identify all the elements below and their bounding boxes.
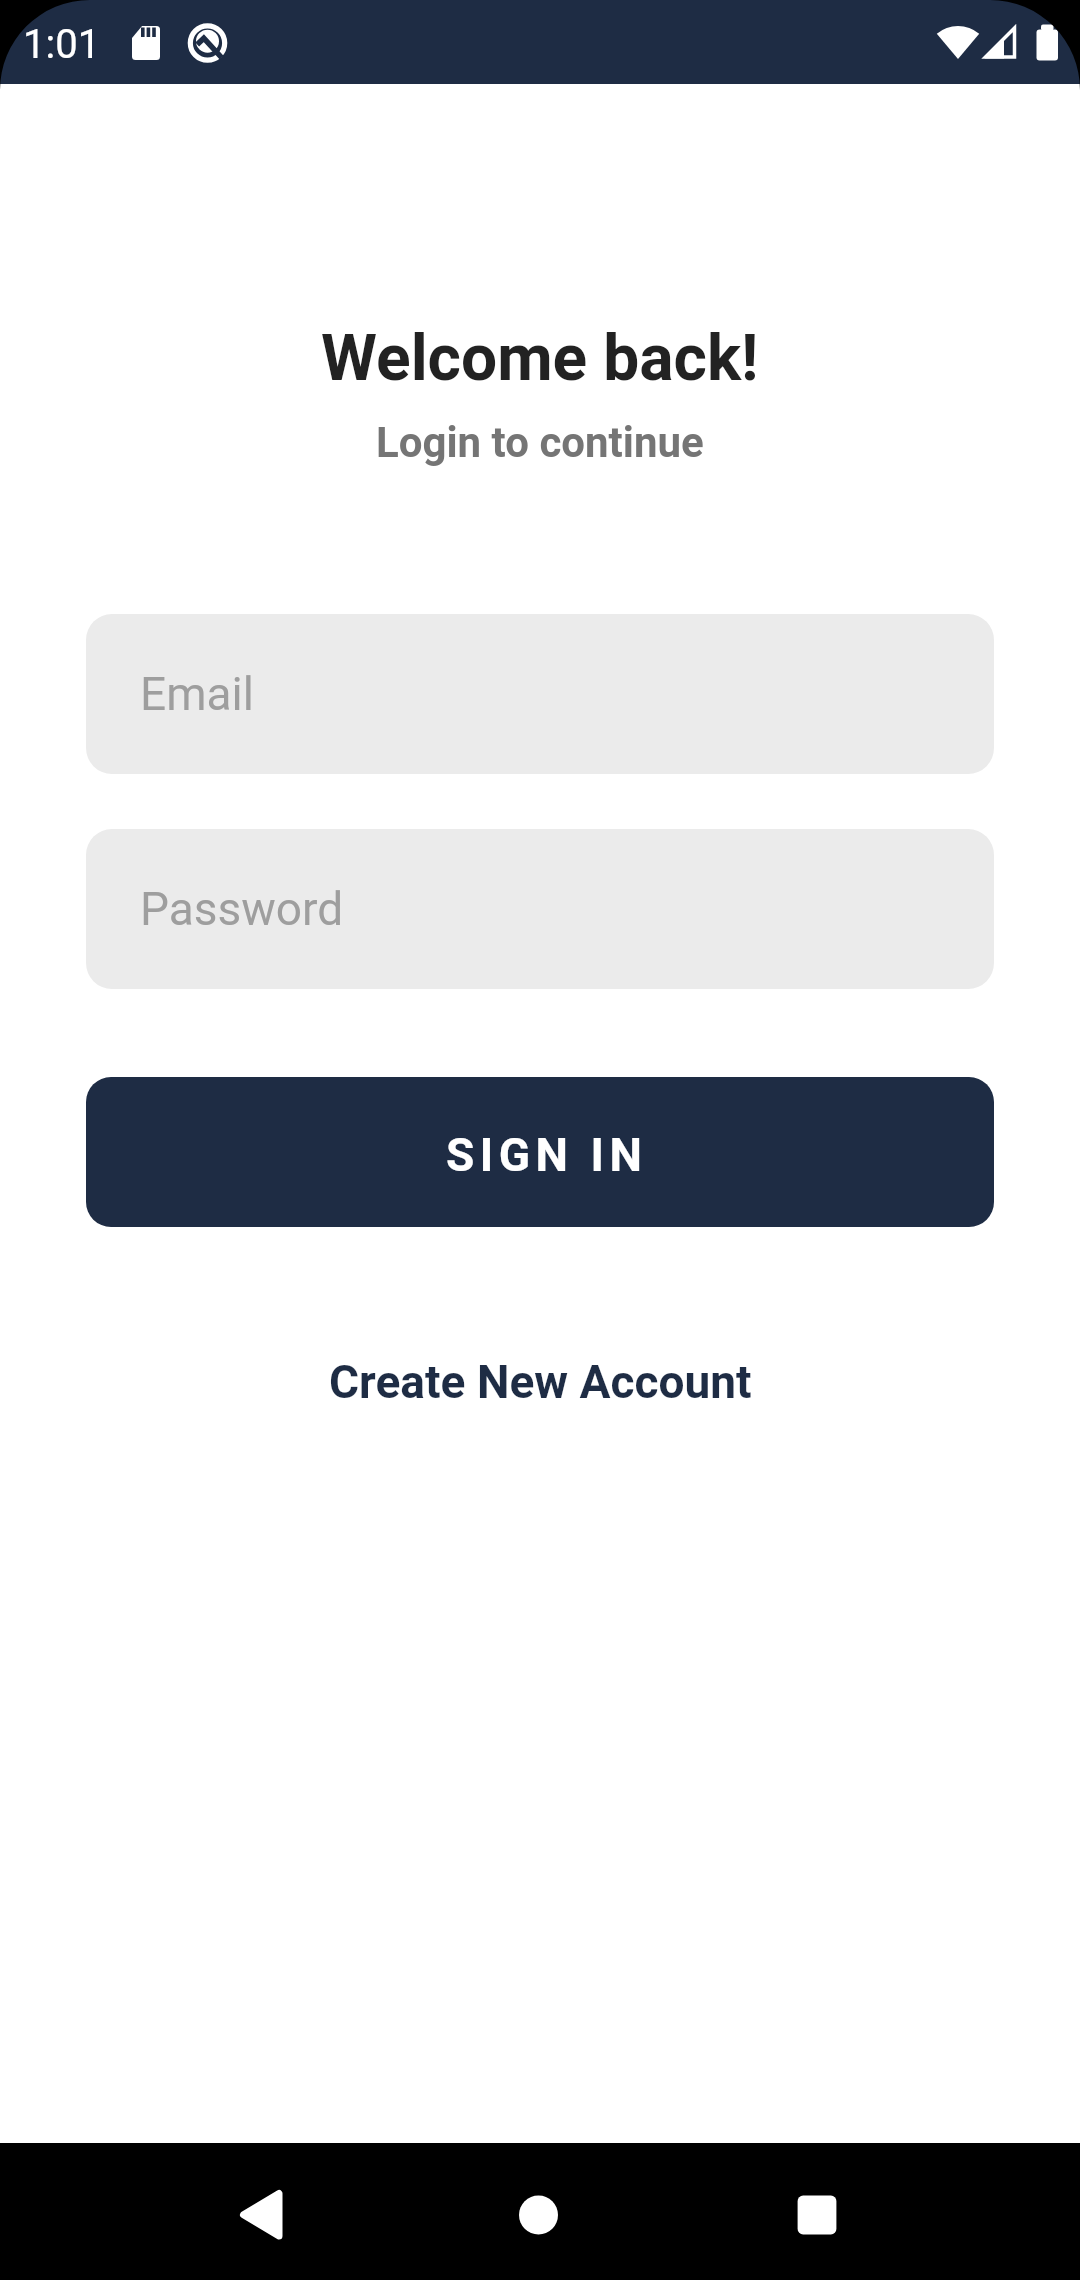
staticText: Welcome back! — [321, 321, 759, 396]
button[interactable] — [503, 2180, 573, 2250]
button[interactable] — [225, 2181, 295, 2251]
staticText: SIGN IN — [446, 1128, 648, 1182]
staticText: Email — [140, 667, 254, 721]
staticText: Login to continue — [376, 418, 704, 467]
button[interactable]: Create New Account — [329, 1355, 752, 1409]
button[interactable]: SIGN IN — [86, 1077, 994, 1227]
staticText: Password — [140, 882, 344, 936]
staticText: 1:01 — [23, 21, 101, 68]
button[interactable] — [782, 2180, 852, 2250]
button[interactable]: Password — [86, 829, 994, 989]
button[interactable]: Email — [86, 614, 994, 774]
staticText: Create New Account — [329, 1355, 752, 1409]
